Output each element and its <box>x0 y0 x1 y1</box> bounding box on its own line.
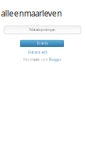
button[interactable]: Lihat versi web <box>0 50 75 55</box>
staticText: Beranda <box>36 42 47 45</box>
staticText: Lihat versi web <box>27 51 47 54</box>
button[interactable]: Blogger <box>49 58 61 61</box>
button[interactable]: Beranda <box>20 40 64 47</box>
staticText: . <box>61 58 62 61</box>
staticText: alleenmaarleven <box>1 8 62 19</box>
staticText: Blogger <box>49 58 61 61</box>
staticText: Tidak ada postingan. <box>29 28 56 32</box>
staticText: Diberdayakan oleh <box>23 58 49 61</box>
